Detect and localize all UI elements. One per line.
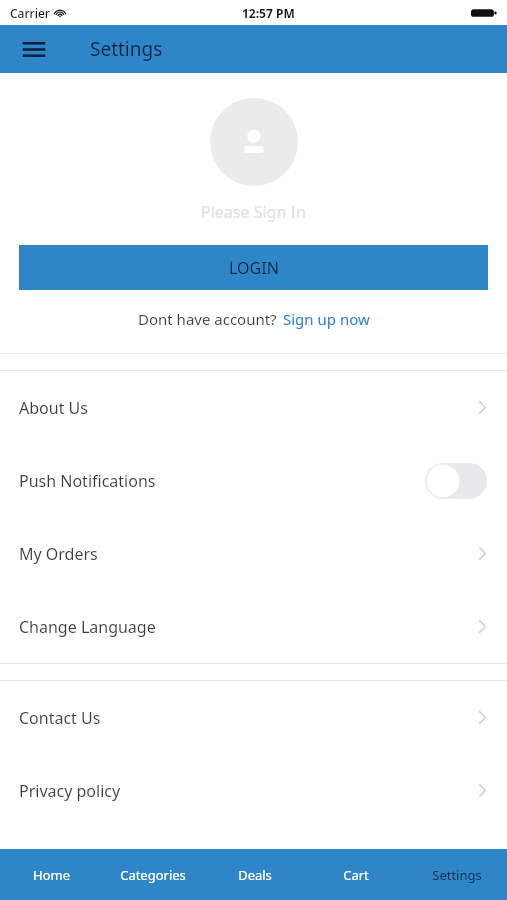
button[interactable]: Change Language (0, 590, 507, 663)
staticText: Sign up now (283, 309, 370, 329)
button[interactable]: Sign up now (283, 309, 370, 329)
button[interactable]: Open navigation menu (16, 31, 52, 67)
staticText: Settings (432, 866, 482, 884)
staticText: Push Notifications (19, 470, 156, 492)
staticText: Privacy policy (19, 780, 121, 802)
button[interactable]: About Us (0, 371, 507, 444)
button[interactable]: Categories (102, 849, 204, 900)
button[interactable]: Profile photo (210, 98, 298, 186)
button[interactable]: Deals (204, 849, 305, 900)
staticText: Deals (238, 866, 272, 884)
staticText: LOGIN (229, 257, 279, 279)
staticText: Cart (343, 866, 369, 884)
staticText: Home (33, 866, 70, 884)
staticText: 12:57 PM (242, 5, 295, 21)
staticText: Contact Us (19, 707, 101, 729)
button[interactable]: My Orders (0, 517, 507, 590)
staticText: Settings (90, 36, 163, 62)
staticText: About Us (19, 397, 88, 419)
staticText: My Orders (19, 543, 98, 565)
staticText: Dont have account? (138, 309, 277, 329)
button[interactable]: Push Notifications (0, 444, 507, 517)
staticText: Categories (120, 866, 186, 884)
staticText: Change Language (19, 616, 156, 638)
button[interactable]: Privacy policy (0, 754, 507, 827)
staticText: Carrier (10, 5, 50, 21)
button[interactable]: Home (0, 849, 102, 900)
button[interactable]: Cart (305, 849, 406, 900)
button[interactable]: Push notifications toggle (425, 463, 487, 499)
button[interactable]: LOGIN (19, 245, 488, 290)
button[interactable]: Contact Us (0, 681, 507, 754)
button[interactable]: Settings (406, 849, 507, 900)
staticText: Please Sign In (201, 201, 306, 223)
